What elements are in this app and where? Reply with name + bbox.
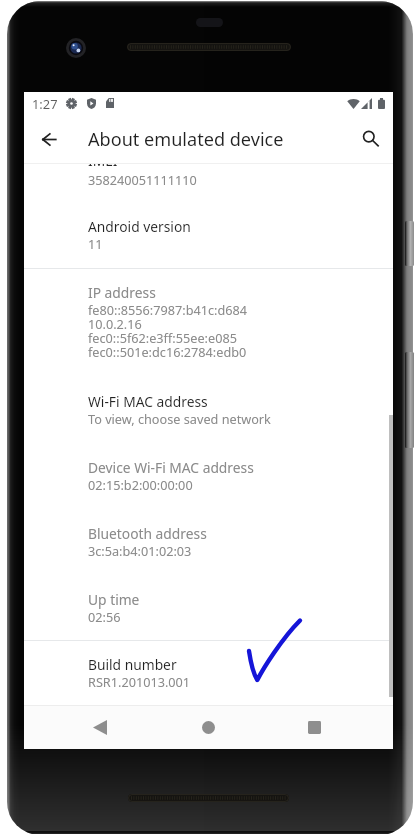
staticText: fec0::5f62:e3ff:55ee:e085 [88,329,237,346]
button[interactable]: Search [345,113,393,161]
staticText: fe80::8556:7987:b41c:d684 [88,301,248,318]
button[interactable]: Home [184,703,232,751]
staticText: Android version [88,217,191,236]
staticText: 358240051111110 [88,171,197,188]
staticText: 02:56 [88,608,121,625]
button[interactable]: Navigate up [25,115,73,163]
staticText: About emulated device [88,127,284,152]
staticText: 3c:5a:b4:01:02:03 [88,542,192,559]
staticText: 1:27 [32,95,58,113]
button[interactable] [24,641,393,700]
staticText: Device Wi-Fi MAC address [88,458,254,477]
staticText: fec0::501e:dc16:2784:edb0 [88,343,247,360]
button[interactable] [24,438,393,504]
button[interactable] [24,372,393,438]
staticText: Bluetooth address [88,524,207,543]
staticText: 10.0.2.16 [88,315,142,332]
button[interactable]: Back [76,703,124,751]
staticText: Up time [88,590,140,609]
staticText: Build number [88,655,177,674]
staticText: IMEI [88,151,118,170]
button[interactable] [24,164,393,198]
button[interactable] [24,269,393,372]
staticText: IP address [88,283,156,302]
staticText: To view, choose saved network [88,410,271,427]
staticText: 02:15:b2:00:00:00 [88,476,193,493]
button[interactable]: Recent apps [290,703,338,751]
button[interactable] [24,198,393,262]
staticText: RSR1.201013.001 [88,673,191,690]
staticText: Wi-Fi MAC address [88,392,208,411]
button[interactable] [24,570,393,636]
button[interactable] [24,504,393,570]
staticText: 11 [88,235,103,252]
